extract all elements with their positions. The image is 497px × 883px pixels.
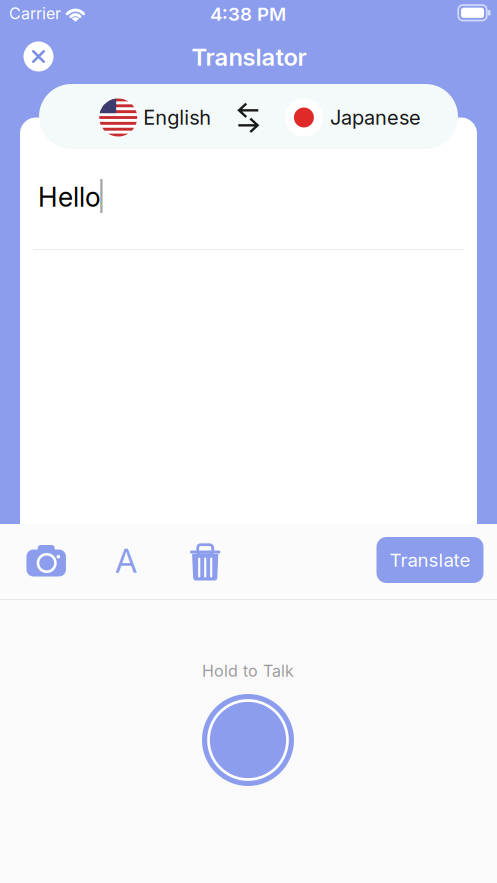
staticText: English	[143, 106, 211, 129]
button[interactable]: Japanese	[285, 98, 421, 136]
button[interactable]	[237, 103, 260, 133]
staticText: Hello	[38, 181, 101, 213]
staticText: Translate	[389, 549, 470, 571]
button[interactable]: Translate	[376, 537, 483, 583]
button[interactable]	[23, 41, 53, 71]
button[interactable]: A	[106, 540, 146, 580]
staticText: Japanese	[330, 106, 421, 129]
staticText: 4:38 PM	[210, 3, 286, 25]
button[interactable]	[202, 694, 294, 786]
staticText: Translator	[191, 43, 306, 71]
staticText: Hold to Talk	[202, 662, 294, 680]
staticText: A	[115, 541, 137, 580]
button[interactable]	[188, 541, 222, 581]
button[interactable]	[24, 540, 68, 576]
button[interactable]: English	[99, 98, 211, 136]
staticText: Carrier	[9, 4, 61, 23]
